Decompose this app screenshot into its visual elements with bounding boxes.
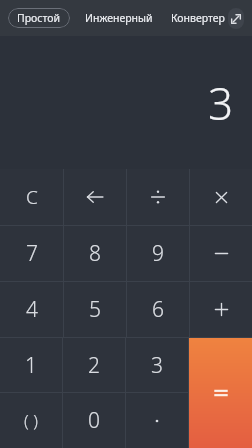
staticText: 7 — [26, 239, 38, 268]
button[interactable]: Multiply — [190, 169, 252, 225]
button[interactable]: 6 — [127, 282, 189, 337]
staticText: Конвертер — [171, 11, 225, 25]
button[interactable]: 8 — [64, 226, 126, 281]
button[interactable]: ( ) — [0, 393, 62, 448]
button[interactable]: Expand — [228, 8, 244, 29]
button[interactable]: 1 — [0, 338, 62, 392]
staticText: 8 — [89, 239, 101, 268]
staticText: 3 — [208, 73, 234, 133]
staticText: 3 — [151, 351, 163, 380]
button[interactable]: 0 — [63, 393, 125, 448]
staticText: 9 — [152, 239, 164, 268]
button[interactable]: Backspace — [64, 169, 126, 225]
staticText: 5 — [89, 295, 101, 324]
button[interactable]: 7 — [0, 226, 63, 281]
staticText: 1 — [25, 351, 37, 380]
staticText: 0 — [88, 406, 100, 435]
button[interactable]: Простой — [8, 8, 70, 28]
button[interactable]: Инженерный — [82, 6, 156, 30]
button[interactable]: Конвертер — [168, 6, 228, 30]
button[interactable]: C — [0, 169, 63, 225]
staticText: ( ) — [24, 409, 38, 432]
button[interactable]: 5 — [64, 282, 126, 337]
staticText: 4 — [26, 295, 38, 324]
button[interactable]: 3 — [126, 338, 188, 392]
staticText: C — [26, 184, 38, 210]
button[interactable]: Divide — [127, 169, 189, 225]
button[interactable]: 4 — [0, 282, 63, 337]
staticText: 2 — [88, 351, 100, 380]
staticText: 6 — [152, 295, 164, 324]
button[interactable]: Equals — [189, 338, 252, 448]
staticText: Инженерный — [85, 11, 153, 25]
staticText: Простой — [17, 11, 61, 25]
button[interactable]: 2 — [63, 338, 125, 392]
button[interactable]: Decimal point — [126, 393, 188, 448]
button[interactable]: Plus — [190, 282, 252, 337]
button[interactable]: Minus — [190, 226, 252, 281]
button[interactable]: 9 — [127, 226, 189, 281]
